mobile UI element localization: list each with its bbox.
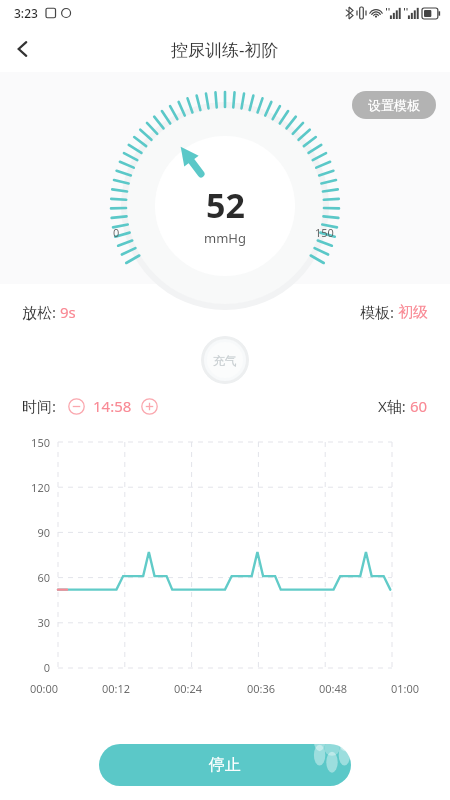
staticText: 14:58	[93, 396, 132, 416]
staticText: 停止	[209, 755, 241, 775]
staticText: 150	[315, 225, 334, 240]
staticText: 00:36	[247, 681, 276, 696]
staticText: 01:00	[391, 681, 420, 696]
staticText: 3:23	[14, 5, 38, 21]
staticText: 52	[206, 182, 245, 228]
staticText: 充气	[213, 353, 237, 368]
button[interactable]: X轴:	[378, 396, 428, 416]
button[interactable]: 放松:	[22, 302, 76, 322]
button[interactable]: 设置模板	[352, 91, 436, 119]
staticText: 00:48	[319, 681, 348, 696]
button[interactable]: 模板:	[360, 302, 428, 322]
staticText: 模板:	[360, 302, 398, 322]
staticText: 00:12	[102, 681, 131, 696]
staticText: 放松:	[22, 302, 60, 322]
staticText: 初级	[398, 303, 428, 322]
staticText: 90	[37, 525, 50, 540]
staticText: 120	[31, 480, 50, 495]
staticText: 150	[31, 435, 50, 450]
button[interactable]: Decrease time	[66, 396, 86, 416]
button[interactable]: Back	[0, 26, 46, 72]
button[interactable]: Increase time	[139, 396, 159, 416]
staticText: 00:24	[174, 681, 203, 696]
staticText: 00:00	[30, 681, 59, 696]
staticText: X轴:	[378, 396, 410, 416]
staticText: 30	[37, 615, 50, 630]
button[interactable]: 停止	[99, 744, 351, 786]
staticText: 0	[113, 225, 120, 240]
button[interactable]: 充气	[201, 336, 249, 384]
staticText: mmHg	[204, 229, 246, 247]
staticText: 60	[410, 396, 428, 416]
staticText: 0	[43, 660, 50, 675]
staticText: 时间:	[22, 396, 60, 416]
staticText: 控尿训练-初阶	[171, 38, 279, 61]
staticText: 设置模板	[368, 97, 420, 113]
staticText: 60	[37, 570, 50, 585]
staticText: 9s	[60, 302, 76, 322]
